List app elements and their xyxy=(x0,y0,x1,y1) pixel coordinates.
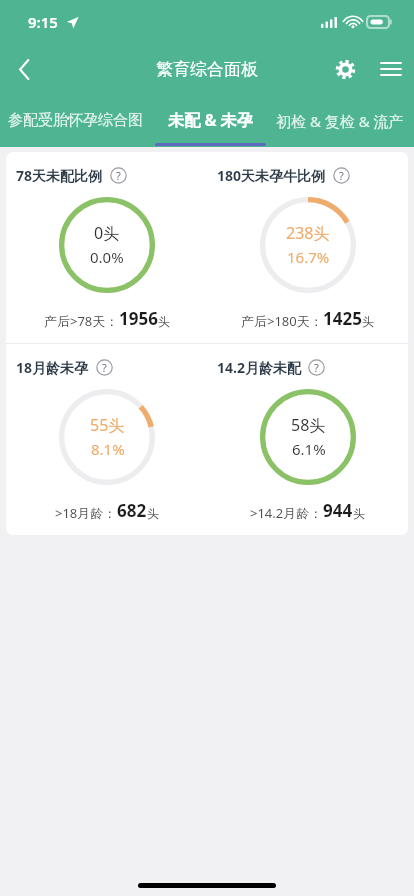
button[interactable]: 180天未孕牛比例 xyxy=(207,152,408,343)
staticText: 未配 & 未孕 xyxy=(168,109,253,131)
staticText: 9:15 xyxy=(28,12,58,32)
staticText: ? xyxy=(102,360,107,375)
staticText: 58头 xyxy=(291,414,326,436)
staticText: 1425 xyxy=(323,307,362,330)
staticText: ? xyxy=(339,168,344,183)
staticText: 18月龄未孕 xyxy=(16,358,89,377)
staticText: 头 xyxy=(147,506,159,521)
staticText: 55头 xyxy=(90,414,125,436)
staticText: ? xyxy=(116,168,121,183)
button[interactable]: Back xyxy=(0,45,48,93)
button[interactable]: Settings xyxy=(322,46,368,92)
staticText: 头 xyxy=(353,506,365,521)
staticText: 繁育综合面板 xyxy=(156,59,258,80)
staticText: 78天未配比例 xyxy=(16,166,103,185)
button[interactable]: Help xyxy=(96,359,113,376)
staticText: 682 xyxy=(117,499,147,522)
staticText: 产后>180天： xyxy=(241,312,323,330)
button[interactable]: 78天未配比例 xyxy=(6,152,207,343)
staticText: 16.7% xyxy=(287,247,330,267)
button[interactable]: 未配 & 未孕 xyxy=(150,94,270,147)
button[interactable]: Help xyxy=(110,167,127,184)
button[interactable]: 18月龄未孕 xyxy=(6,344,207,535)
button[interactable]: Help xyxy=(308,359,325,376)
staticText: 6.1% xyxy=(292,439,326,459)
button[interactable]: 参配受胎怀孕综合图 xyxy=(0,94,150,147)
button[interactable]: Help xyxy=(333,167,350,184)
button[interactable]: 14.2月龄未配 xyxy=(207,344,408,535)
staticText: ? xyxy=(314,360,319,375)
staticText: 初检 & 复检 & 流产 & xyxy=(276,111,414,131)
staticText: 14.2月龄未配 xyxy=(217,358,301,377)
staticText: 头 xyxy=(362,314,374,329)
staticText: 180天未孕牛比例 xyxy=(217,166,326,185)
staticText: 0.0% xyxy=(90,247,124,267)
staticText: 8.1% xyxy=(91,439,125,459)
staticText: 1956 xyxy=(119,307,158,330)
staticText: 944 xyxy=(323,499,353,522)
button[interactable]: Menu xyxy=(368,46,414,92)
button[interactable]: 初检 & 复检 & 流产 & xyxy=(270,94,414,147)
staticText: >14.2月龄： xyxy=(250,504,323,522)
staticText: >18月龄： xyxy=(55,504,117,522)
staticText: 0头 xyxy=(94,222,120,244)
staticText: 头 xyxy=(158,314,170,329)
staticText: 产后>78天： xyxy=(44,312,119,330)
staticText: 参配受胎怀孕综合图 xyxy=(8,111,143,130)
staticText: 238头 xyxy=(286,222,330,244)
